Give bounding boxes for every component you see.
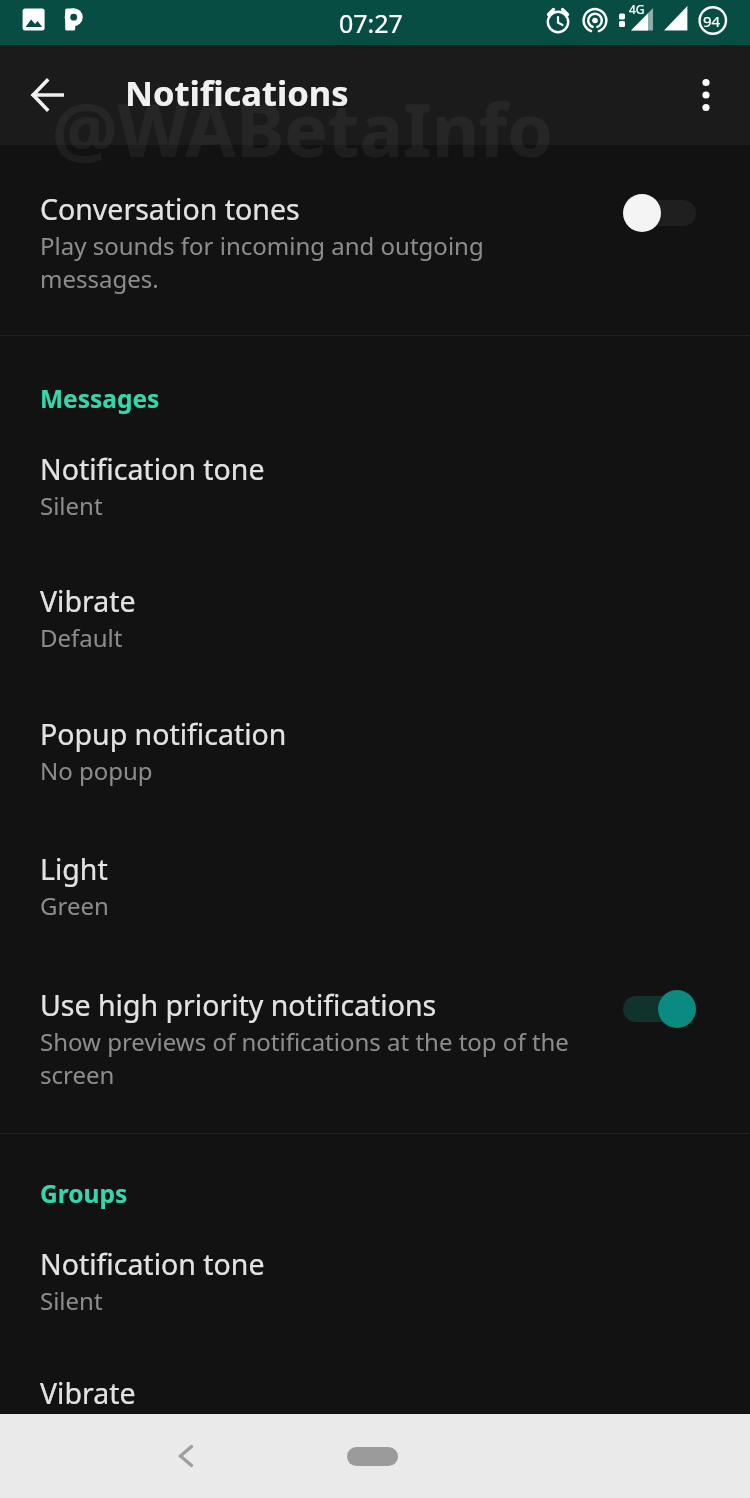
staticText: 4G: [629, 1, 645, 17]
button[interactable]: Messages: [0, 382, 750, 415]
staticText: @WABetaInfo: [52, 79, 553, 178]
staticText: 07:27: [339, 6, 403, 40]
staticText: Notification tone: [40, 1245, 265, 1284]
button[interactable]: Notification tone: [0, 1245, 750, 1317]
staticText: Silent: [40, 1284, 103, 1317]
staticText: Notifications: [125, 69, 349, 116]
staticText: Groups: [40, 1177, 128, 1210]
staticText: Vibrate: [40, 582, 136, 621]
button[interactable]: Notification tone: [0, 450, 750, 522]
button[interactable]: Switch off: [615, 188, 707, 238]
button[interactable]: Groups: [0, 1177, 750, 1210]
button[interactable]: Use high priority notifications: [0, 986, 750, 1091]
button[interactable]: Conversation tones: [0, 190, 750, 295]
staticText: Silent: [40, 489, 103, 522]
button[interactable]: Navigate up: [16, 63, 80, 127]
button[interactable]: Home: [322, 1431, 422, 1481]
button[interactable]: Switch on: [615, 984, 707, 1034]
staticText: Default: [40, 621, 123, 654]
staticText: Show previews of notifications at the to…: [40, 1025, 585, 1091]
staticText: Light: [40, 850, 108, 889]
staticText: 94: [703, 11, 721, 31]
staticText: Popup notification: [40, 715, 287, 754]
staticText: Notification tone: [40, 450, 265, 489]
button[interactable]: Vibrate: [0, 582, 750, 654]
staticText: Vibrate: [40, 1374, 136, 1413]
staticText: No popup: [40, 754, 153, 787]
staticText: Conversation tones: [40, 190, 300, 229]
button[interactable]: Popup notification: [0, 715, 750, 787]
button[interactable]: Light: [0, 850, 750, 922]
staticText: Messages: [40, 382, 160, 415]
button[interactable]: Vibrate: [0, 1374, 750, 1413]
button[interactable]: More options: [674, 63, 738, 127]
staticText: Use high priority notifications: [40, 986, 437, 1025]
button[interactable]: Back: [156, 1426, 216, 1486]
staticText: Green: [40, 889, 109, 922]
staticText: Play sounds for incoming and outgoing me…: [40, 229, 585, 295]
